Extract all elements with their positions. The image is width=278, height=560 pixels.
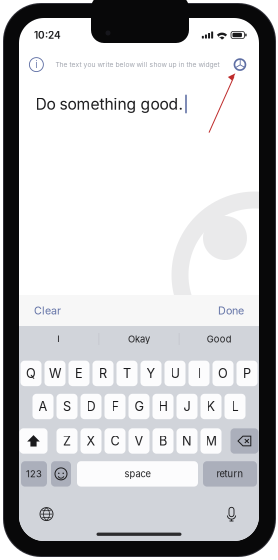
staticText: Okay — [128, 333, 150, 345]
staticText: 10:24 — [34, 29, 61, 41]
button[interactable]: P — [236, 361, 257, 386]
button[interactable]: K — [200, 394, 221, 419]
staticText: space — [124, 468, 150, 480]
button[interactable]: Switch keyboard — [40, 508, 53, 521]
button[interactable]: C — [104, 428, 125, 454]
staticText: T — [123, 366, 131, 381]
button[interactable]: D — [80, 394, 101, 419]
staticText: Do something good. — [35, 95, 182, 113]
staticText: Good — [207, 333, 232, 345]
button[interactable]: T — [116, 361, 137, 386]
button[interactable]: B — [152, 428, 173, 454]
button[interactable]: Good — [179, 326, 259, 352]
staticText: J — [183, 399, 190, 414]
staticText: Z — [63, 433, 71, 449]
staticText: Clear — [34, 304, 61, 317]
staticText: i — [35, 59, 37, 70]
staticText: The text you write below will show up in… — [55, 61, 219, 69]
button[interactable]: Dictation — [226, 507, 237, 522]
button[interactable]: R — [92, 361, 113, 386]
staticText: M — [205, 433, 216, 449]
button[interactable]: space — [77, 461, 198, 487]
button[interactable]: Q — [20, 361, 41, 386]
staticText: P — [243, 366, 251, 381]
staticText: H — [158, 399, 167, 414]
button[interactable]: J — [176, 394, 197, 419]
button[interactable]: Delete — [230, 428, 258, 454]
staticText: 123 — [26, 468, 42, 480]
staticText: Done — [218, 304, 244, 317]
button[interactable]: Y — [140, 361, 161, 386]
button[interactable]: N — [176, 428, 197, 454]
staticText: A — [38, 399, 47, 414]
staticText: U — [170, 366, 179, 381]
button[interactable]: return — [203, 461, 257, 487]
staticText: B — [159, 433, 167, 449]
button[interactable]: H — [152, 394, 173, 419]
button[interactable]: F — [104, 394, 125, 419]
staticText: R — [99, 366, 107, 381]
staticText: return — [216, 468, 243, 480]
button[interactable]: I — [188, 361, 209, 386]
button[interactable]: U — [164, 361, 185, 386]
button[interactable]: A — [32, 394, 53, 419]
button[interactable]: L — [224, 394, 245, 419]
staticText: I — [57, 333, 60, 345]
staticText: C — [110, 433, 119, 449]
button[interactable]: 123 — [21, 461, 47, 487]
button[interactable]: Emoji — [51, 461, 71, 487]
staticText: G — [134, 399, 143, 414]
button[interactable]: Z — [56, 428, 77, 454]
button[interactable]: Okay — [99, 326, 179, 352]
staticText: W — [49, 366, 61, 381]
button[interactable]: Shift — [19, 428, 47, 454]
button[interactable]: W — [44, 361, 65, 386]
button[interactable]: I — [19, 326, 99, 352]
button[interactable]: G — [128, 394, 149, 419]
button[interactable]: M — [200, 428, 221, 454]
staticText: Q — [26, 366, 36, 381]
button[interactable]: X — [80, 428, 101, 454]
button[interactable]: Clear — [34, 295, 78, 326]
staticText: K — [206, 399, 215, 414]
button[interactable]: Settings — [233, 58, 247, 71]
button[interactable]: O — [212, 361, 233, 386]
button[interactable]: E — [68, 361, 89, 386]
staticText: Y — [146, 366, 155, 381]
staticText: S — [63, 399, 71, 414]
staticText: V — [134, 433, 143, 449]
staticText: X — [86, 433, 95, 449]
staticText: D — [86, 399, 95, 414]
button[interactable]: Done — [200, 295, 244, 326]
staticText: I — [197, 366, 200, 381]
staticText: E — [75, 366, 83, 381]
staticText: L — [231, 399, 238, 414]
staticText: O — [218, 366, 228, 381]
button[interactable]: V — [128, 428, 149, 454]
staticText: F — [111, 399, 118, 414]
button[interactable]: S — [56, 394, 77, 419]
staticText: N — [182, 433, 192, 449]
